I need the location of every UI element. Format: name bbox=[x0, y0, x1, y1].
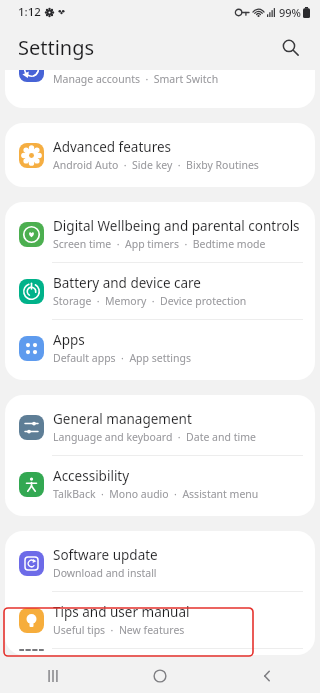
staticText: Android Auto · Side key · Bixby Routines bbox=[53, 158, 259, 172]
staticText: Storage · Memory · Device protection bbox=[53, 294, 247, 308]
staticText: Accessibility bbox=[53, 467, 130, 485]
staticText: Software update bbox=[53, 546, 158, 564]
staticText: Apps bbox=[53, 331, 85, 349]
staticText: 1:12 bbox=[18, 4, 41, 20]
staticText: Advanced features bbox=[53, 138, 172, 156]
staticText: Download and install bbox=[53, 566, 157, 580]
button[interactable]: Back bbox=[243, 659, 291, 693]
staticText: Default apps · App settings bbox=[53, 351, 191, 365]
staticText: Digital Wellbeing and parental controls bbox=[53, 217, 300, 235]
button[interactable]: Home bbox=[136, 659, 184, 693]
button[interactable]: Tips and user manual bbox=[5, 592, 315, 648]
staticText: Battery and device care bbox=[53, 274, 201, 292]
button[interactable]: Software update bbox=[5, 535, 315, 591]
button[interactable]: General management bbox=[5, 399, 315, 455]
staticText: 99% bbox=[279, 5, 301, 20]
button[interactable]: About phone bbox=[5, 649, 315, 651]
button[interactable]: Accessibility bbox=[5, 456, 315, 512]
button[interactable]: Accounts and backup bbox=[5, 70, 315, 88]
button[interactable]: Recent apps bbox=[29, 659, 77, 693]
staticText: Screen time · App timers · Bedtime mode bbox=[53, 237, 266, 251]
staticText: TalkBack · Mono audio · Assistant menu bbox=[53, 487, 259, 501]
button[interactable]: Search bbox=[270, 27, 310, 67]
button[interactable]: Digital Wellbeing and parental controls bbox=[5, 206, 315, 262]
staticText: Tips and user manual bbox=[53, 603, 190, 621]
staticText: Manage accounts · Smart Switch bbox=[53, 72, 219, 86]
staticText: General management bbox=[53, 410, 192, 428]
button[interactable]: Apps bbox=[5, 320, 315, 376]
staticText: Language and keyboard · Date and time bbox=[53, 430, 256, 444]
staticText: Settings bbox=[18, 34, 95, 61]
button[interactable]: Advanced features bbox=[5, 127, 315, 183]
staticText: Useful tips · New features bbox=[53, 623, 185, 637]
button[interactable]: Battery and device care bbox=[5, 263, 315, 319]
